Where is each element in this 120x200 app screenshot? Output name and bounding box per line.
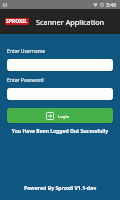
staticText: SPROXIL <box>6 18 28 25</box>
staticText: Powered By Sproxil V1.1-dev <box>0 184 120 191</box>
button[interactable]: Username input field <box>7 59 113 71</box>
staticText: 3:46 <box>106 1 117 8</box>
staticText: Enter Username <box>7 48 46 55</box>
staticText: Enter Password <box>7 77 44 84</box>
staticText: You Have Been Logged Out Sucessfully <box>7 128 113 135</box>
staticText: Scanner Application <box>36 17 105 27</box>
button[interactable]: Login <box>7 108 113 123</box>
button[interactable]: Password input field <box>7 88 113 100</box>
staticText: Login <box>58 113 70 119</box>
button[interactable]: SPROXIL <box>0 9 120 34</box>
